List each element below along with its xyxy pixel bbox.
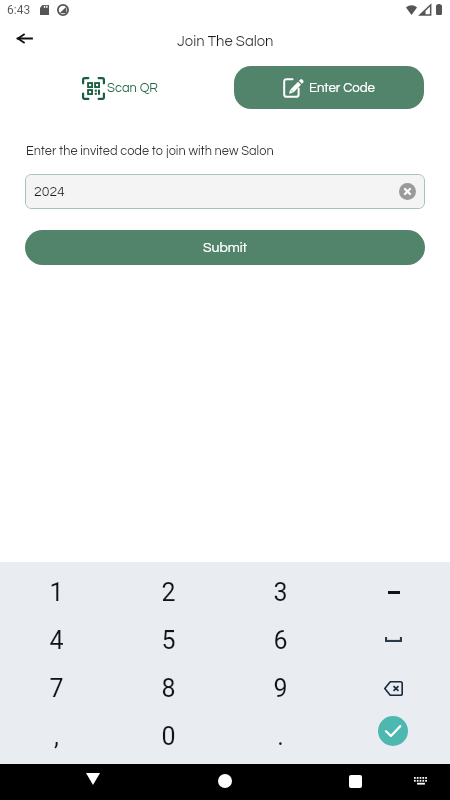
staticText: 4 [49,626,64,655]
staticText: Scan QR [107,81,158,94]
staticText: . [277,722,284,751]
staticText: 2 [161,578,176,607]
button[interactable]: Clear text [399,183,416,200]
button[interactable]: Done [337,712,450,760]
staticText: , [54,722,59,751]
button[interactable]: 6 [224,616,337,664]
button[interactable]: 4 [0,616,112,664]
button[interactable]: Back [10,24,38,52]
staticText: 3 [273,578,288,607]
button[interactable]: Dash [337,568,450,616]
button[interactable]: Enter Code [234,66,424,109]
staticText: 5 [161,626,176,655]
button[interactable]: 9 [224,664,337,712]
button[interactable]: . [224,712,337,760]
button[interactable]: , [0,712,112,760]
staticText: 6:43 [7,3,31,17]
button[interactable]: 3 [224,568,337,616]
button[interactable]: Backspace [337,664,450,712]
button[interactable]: 5 [112,616,224,664]
staticText: 7 [49,674,64,703]
staticText: Enter Code [309,81,375,95]
staticText: 2024 [34,185,65,199]
button[interactable]: 2 [112,568,224,616]
button[interactable]: Back [69,764,117,794]
staticText: 8 [161,674,176,703]
staticText: 1 [49,578,64,607]
button[interactable]: Submit [25,230,425,265]
staticText: Enter the invited code to join with new … [26,145,274,158]
staticText: 6 [273,626,288,655]
button[interactable]: 2024 [25,174,425,209]
button[interactable]: Recent apps [331,766,379,796]
staticText: 0 [161,722,176,751]
button[interactable]: Scan QR [34,66,205,109]
staticText: Join The Salon [177,34,274,49]
button[interactable]: 1 [0,568,112,616]
button[interactable]: 7 [0,664,112,712]
button[interactable]: 0 [112,712,224,760]
button[interactable]: 8 [112,664,224,712]
button[interactable]: Home [201,766,249,796]
staticText: Submit [203,241,248,255]
staticText: 9 [273,674,288,703]
button[interactable]: Switch keyboard [403,769,439,793]
button[interactable]: Space [337,616,450,664]
